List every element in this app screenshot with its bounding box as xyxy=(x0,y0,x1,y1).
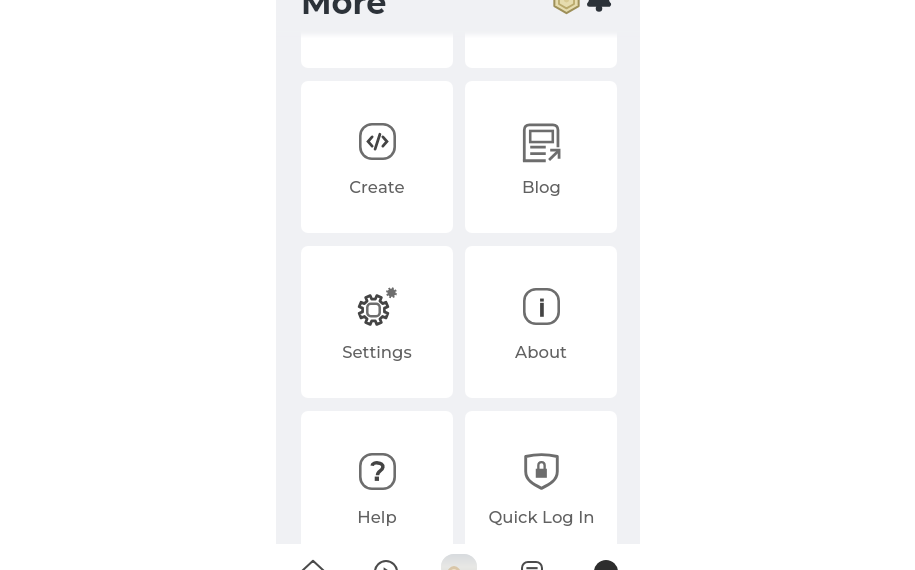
button[interactable]: Create xyxy=(301,81,453,233)
button[interactable]: Notifications xyxy=(587,0,611,8)
button[interactable]: Help xyxy=(301,411,453,563)
button[interactable]: Rewards badge xyxy=(553,0,580,14)
button[interactable] xyxy=(465,0,617,68)
staticText: Quick Log In xyxy=(488,507,595,527)
staticText: More xyxy=(301,0,387,22)
staticText: Settings xyxy=(342,342,412,362)
staticText: About xyxy=(515,342,567,362)
button[interactable]: Videos xyxy=(356,544,416,570)
staticText: Create xyxy=(349,177,405,197)
button[interactable]: More xyxy=(576,544,636,570)
button[interactable]: About xyxy=(465,246,617,398)
button[interactable]: Settings xyxy=(301,246,453,398)
button[interactable]: Messages xyxy=(502,544,562,570)
button[interactable]: Profile xyxy=(429,544,489,570)
button[interactable]: Quick Log In xyxy=(465,411,617,563)
button[interactable] xyxy=(301,0,453,68)
staticText: Blog xyxy=(522,177,561,197)
button[interactable]: Home xyxy=(283,544,343,570)
staticText: Help xyxy=(357,507,397,527)
button[interactable]: Blog xyxy=(465,81,617,233)
